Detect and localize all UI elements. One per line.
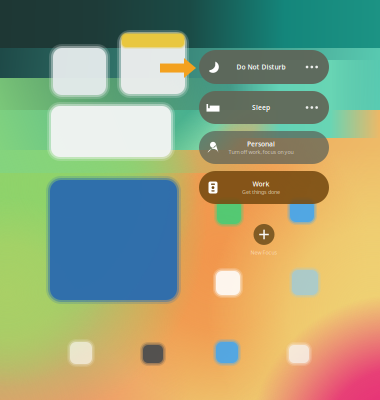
button[interactable]: Work	[199, 171, 329, 204]
button[interactable]: New Focus	[199, 211, 329, 257]
staticText: New Focus	[250, 249, 277, 256]
button[interactable]: Do Not Disturb	[199, 50, 329, 84]
staticText: Personal	[247, 139, 275, 148]
button[interactable]: Personal	[199, 131, 329, 164]
staticText: Turn off work, focus on you	[228, 148, 293, 155]
staticText: Do Not Disturb	[236, 63, 285, 71]
staticText: Sleep	[252, 103, 270, 112]
staticText: Get things done	[242, 188, 280, 195]
button[interactable]: Sleep	[199, 91, 329, 124]
staticText: Work	[252, 179, 269, 188]
